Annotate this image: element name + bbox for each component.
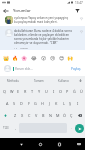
staticText: Ö [63,113,66,118]
staticText: 😮 [41,55,47,61]
staticText: 1 s [14,46,18,49]
button[interactable]: Home [36,140,45,149]
staticText: I [77,101,79,106]
button[interactable]: W [8,85,15,97]
staticText: F [28,101,30,106]
button[interactable]: ?123 [0,123,12,133]
staticText: G [34,101,37,106]
button[interactable]: X [19,109,26,121]
button[interactable]: Voice input [76,76,85,85]
button[interactable]: I [74,97,81,109]
button[interactable]: cyclonpax Yapay zekanın yeni yapayginç b… [0,16,85,26]
button[interactable]: E [15,85,22,97]
button[interactable]: Z [11,109,19,121]
button[interactable]: Tamam [26,76,51,85]
button[interactable]: Like [78,26,85,50]
button[interactable]: Y [36,85,43,97]
button[interactable]: V [33,109,40,121]
button[interactable]: Back [0,5,11,16]
button[interactable]: P [64,85,71,97]
staticText: Yorum ekle... [15,67,33,71]
button[interactable]: R [22,85,29,97]
button[interactable]: Q [0,85,8,97]
button[interactable]: Paylaş [70,67,82,71]
button[interactable]: 😢 [49,54,56,61]
button[interactable]: A [4,97,11,109]
staticText: 🌸 [21,55,28,61]
button[interactable]: Ö [61,109,68,121]
staticText: I [53,89,55,94]
button[interactable]: N [47,109,54,121]
staticText: S [13,101,16,106]
button[interactable]: Hide keyboard [74,140,83,149]
staticText: Y [38,89,41,94]
staticText: Yanıtla [20,46,28,49]
button[interactable]: I [50,85,57,97]
staticText: T [31,89,34,94]
button[interactable]: Yorum ekle... [13,61,70,76]
button[interactable]: 🔥 [12,54,19,61]
button[interactable]: Methodu [0,76,26,85]
staticText: N [49,113,52,118]
button[interactable]: J [46,97,53,109]
staticText: J [49,101,51,106]
button[interactable]: 🌸 [21,54,28,61]
staticText: W [10,89,14,94]
button[interactable]: 😂 [30,54,37,61]
button[interactable]: T [29,85,36,97]
button[interactable]: Sort comments [72,5,83,16]
staticText: B [42,113,45,118]
button[interactable]: B [40,109,47,121]
button[interactable]: Backspace [75,109,85,121]
button[interactable]: , [12,123,18,133]
staticText: O [59,89,62,94]
staticText: 😂 [31,55,37,61]
button[interactable]: Ş [67,97,74,109]
staticText: C [28,113,31,118]
button[interactable]: O [57,85,64,97]
button[interactable]: abdullahturan Bunu sadece 4 dakika sonra… [0,26,85,50]
staticText: Ç [70,113,73,118]
staticText: 😍 [59,55,65,61]
staticText: cyclonpax Yapay zekanın yeni yapayginç b… [14,16,69,24]
button[interactable]: S [11,97,18,109]
button[interactable]: 🙌 [67,54,74,61]
staticText: H [41,101,44,106]
button[interactable]: K [53,97,60,109]
button[interactable]: Recent apps [55,140,64,149]
button[interactable]: 😍 [58,54,65,61]
button[interactable]: Ü [78,85,85,97]
staticText: Methodu [7,79,19,83]
staticText: Tamam [34,79,44,83]
button[interactable]: Ğ [71,85,78,97]
staticText: 🔥 [12,55,19,61]
button[interactable]: H [39,97,46,109]
button[interactable]: Kullanıcı [51,76,76,85]
button[interactable]: M [54,109,61,121]
staticText: E [17,89,20,94]
button[interactable]: Ç [68,109,75,121]
staticText: abdullahturan Bunu sadece 4 dakika sonra… [14,29,72,45]
button[interactable]: F [25,97,32,109]
button[interactable]: G [32,97,39,109]
button[interactable]: D [18,97,25,109]
button[interactable]: 😮 [40,54,47,61]
button[interactable]: 👑 [3,54,10,61]
staticText: Ü [80,89,83,94]
staticText: Kullanıcı [58,79,69,83]
staticText: U [45,89,48,94]
button[interactable]: Like [78,16,85,26]
staticText: Z [14,113,17,118]
staticText: M [56,113,60,118]
button[interactable]: Send [74,123,85,133]
button[interactable]: Back [17,140,26,149]
button[interactable]: U [43,85,50,97]
button[interactable]: L [60,97,67,109]
button[interactable]: C [26,109,33,121]
button[interactable]: Shift [0,109,11,121]
staticText: , [15,126,16,130]
staticText: Q [3,89,6,94]
